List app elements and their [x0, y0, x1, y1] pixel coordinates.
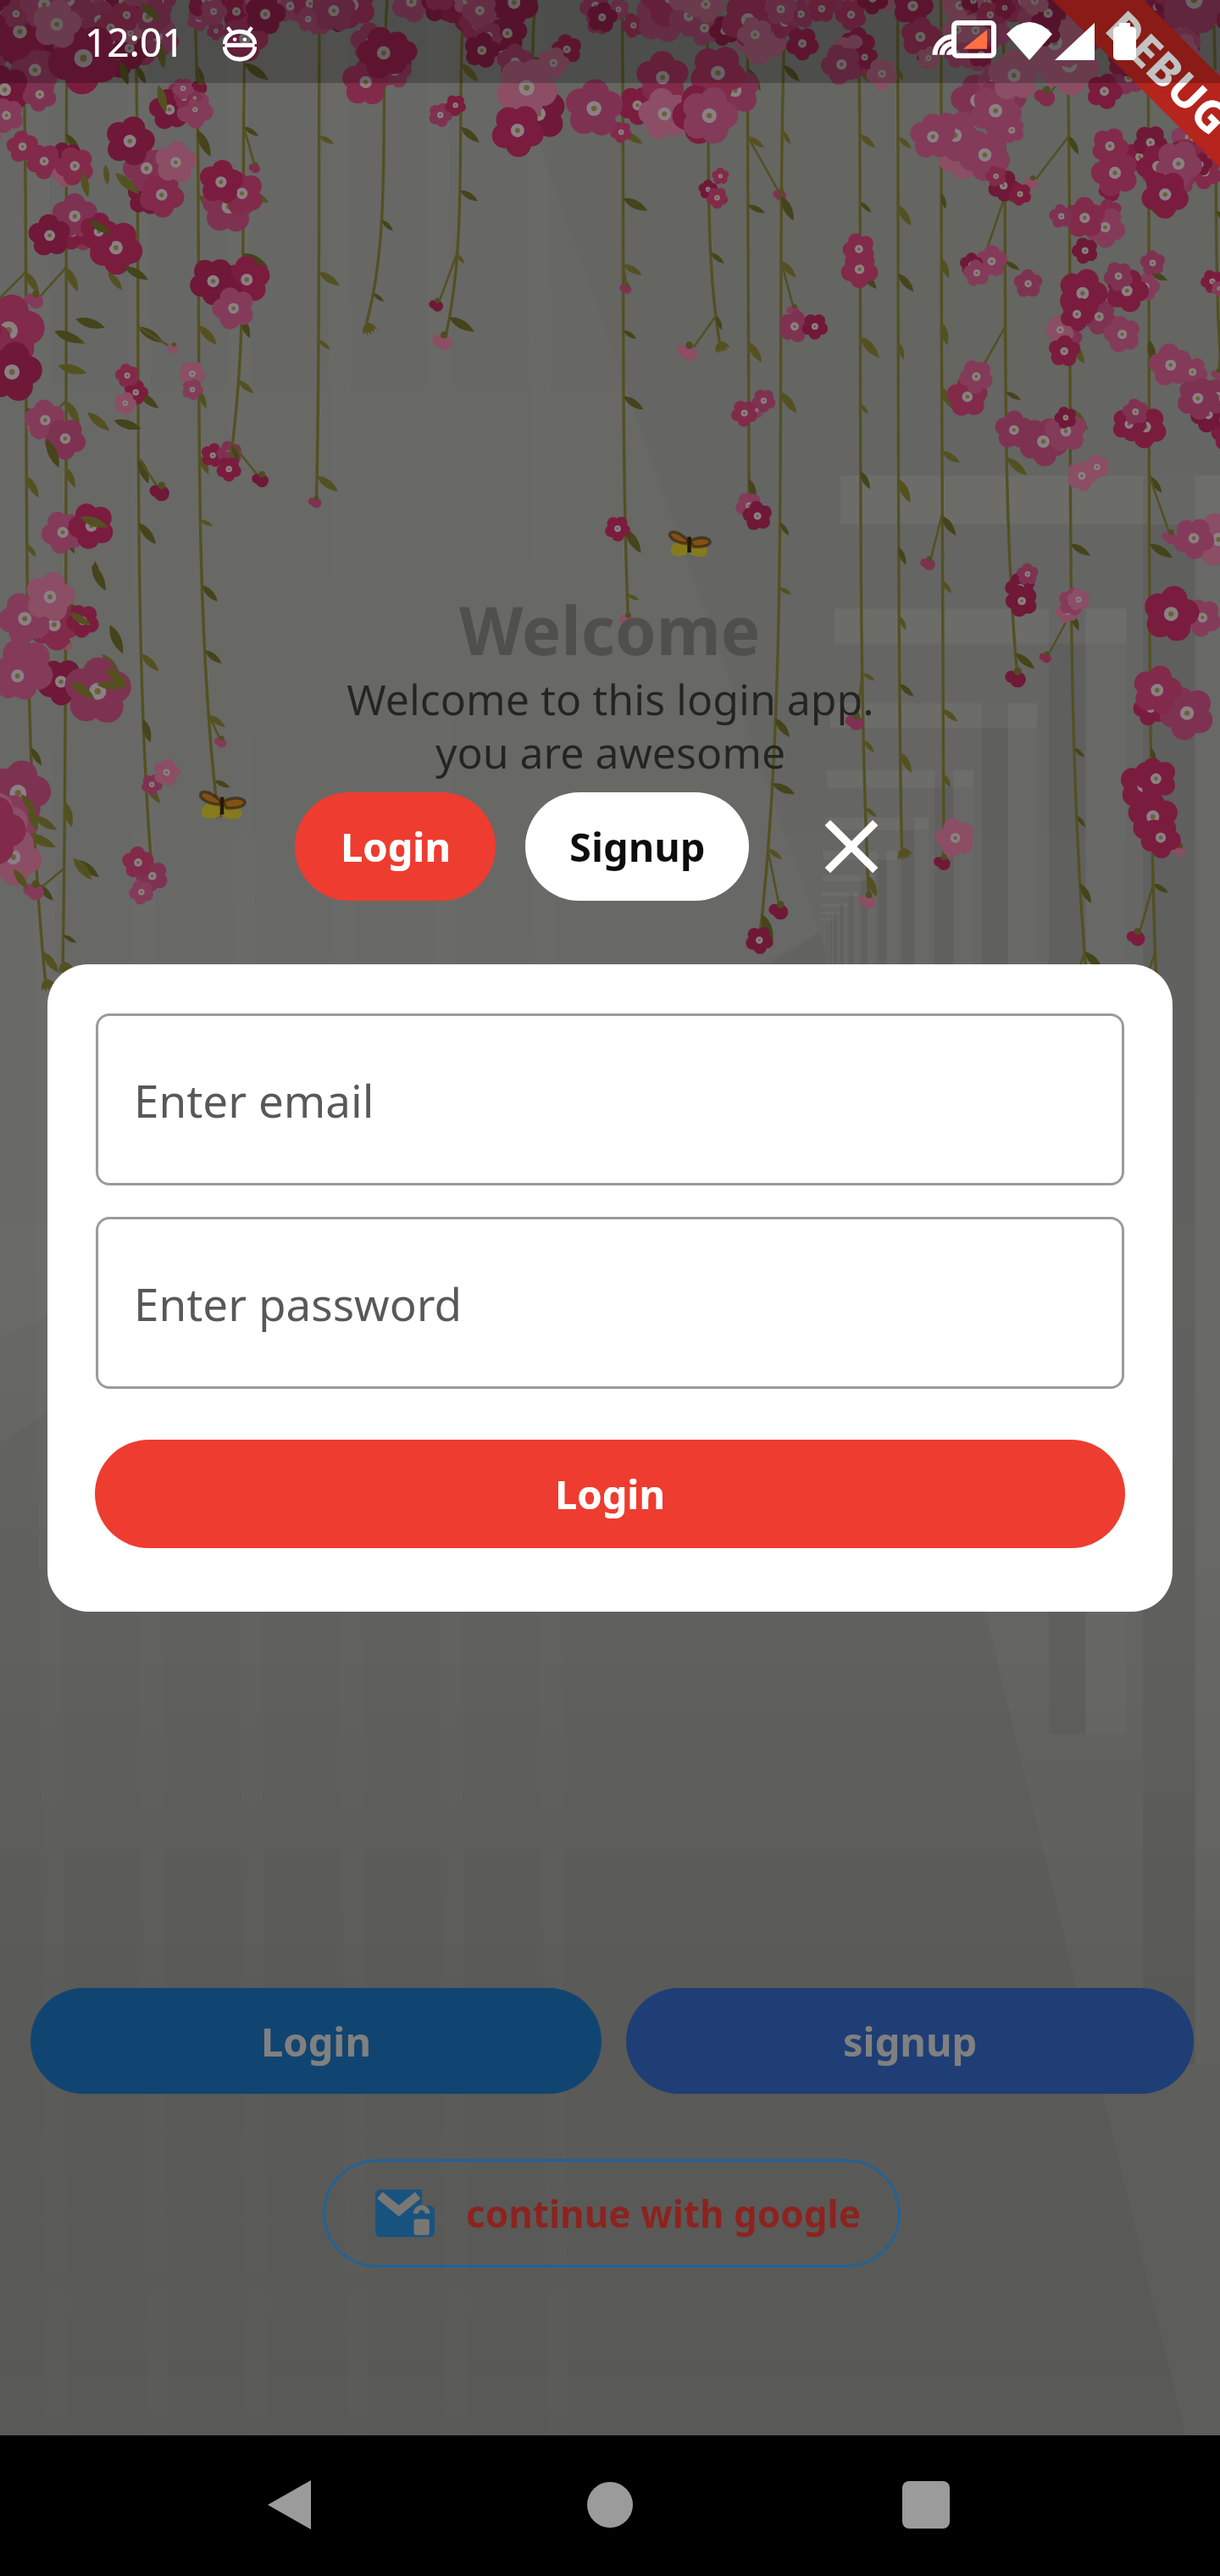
staticText: DEBUG	[1094, 0, 1220, 147]
staticText: Login	[555, 1467, 665, 1521]
staticText: Welcome	[459, 585, 761, 675]
staticText: 12:01	[85, 15, 185, 69]
button[interactable]: Home	[542, 2454, 678, 2556]
button[interactable]: continue with google	[323, 2159, 901, 2268]
button[interactable]: Close	[794, 792, 909, 901]
staticText: Login	[341, 819, 451, 874]
button[interactable]: signup	[626, 1988, 1194, 2094]
button[interactable]: Enter email	[96, 1013, 1124, 1185]
staticText: Welcome to this login app. you are aweso…	[347, 670, 874, 780]
button[interactable]: Recent apps	[858, 2454, 994, 2556]
button[interactable]: Signup	[525, 792, 749, 901]
staticText: Login	[261, 2014, 371, 2068]
button[interactable]: Login	[295, 792, 496, 901]
button[interactable]: Enter password	[96, 1217, 1124, 1389]
button[interactable]: Login	[30, 1988, 602, 2094]
staticText: signup	[843, 2014, 978, 2068]
button[interactable]: Back	[221, 2454, 357, 2556]
staticText: Enter email	[134, 1069, 374, 1130]
staticText: continue with google	[466, 2188, 861, 2239]
button[interactable]: Login	[95, 1440, 1125, 1548]
staticText: Signup	[569, 819, 706, 874]
staticText: Enter password	[134, 1273, 463, 1334]
